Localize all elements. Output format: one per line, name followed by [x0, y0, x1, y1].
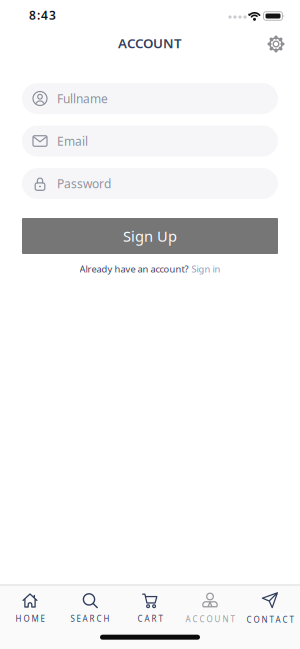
staticText: 8:43: [29, 7, 56, 23]
staticText: Already have an account?: [79, 263, 188, 275]
button[interactable]: SEARCH: [60, 589, 120, 627]
staticText: Password: [57, 175, 111, 191]
staticText: Email: [57, 133, 88, 149]
button[interactable]: Email: [22, 125, 278, 156]
button[interactable]: Settings: [266, 34, 286, 54]
button[interactable]: Sign Up: [22, 218, 278, 254]
button[interactable]: Password: [22, 168, 278, 199]
button[interactable]: Sign in: [191, 263, 220, 275]
staticText: CART: [137, 613, 162, 624]
button[interactable]: ACCOUNT: [180, 589, 240, 627]
button[interactable]: HOME: [0, 589, 60, 627]
staticText: Sign Up: [123, 226, 177, 246]
staticText: ACCOUNT: [118, 34, 182, 52]
button[interactable]: CART: [120, 589, 180, 627]
staticText: Fullname: [57, 90, 108, 106]
button[interactable]: CONTACT: [240, 589, 300, 627]
staticText: SEARCH: [70, 613, 109, 624]
staticText: CONTACT: [246, 614, 293, 625]
staticText: ACCOUNT: [185, 614, 234, 624]
staticText: HOME: [15, 613, 44, 624]
button[interactable]: Fullname: [22, 83, 278, 114]
staticText: Sign in: [191, 263, 220, 275]
